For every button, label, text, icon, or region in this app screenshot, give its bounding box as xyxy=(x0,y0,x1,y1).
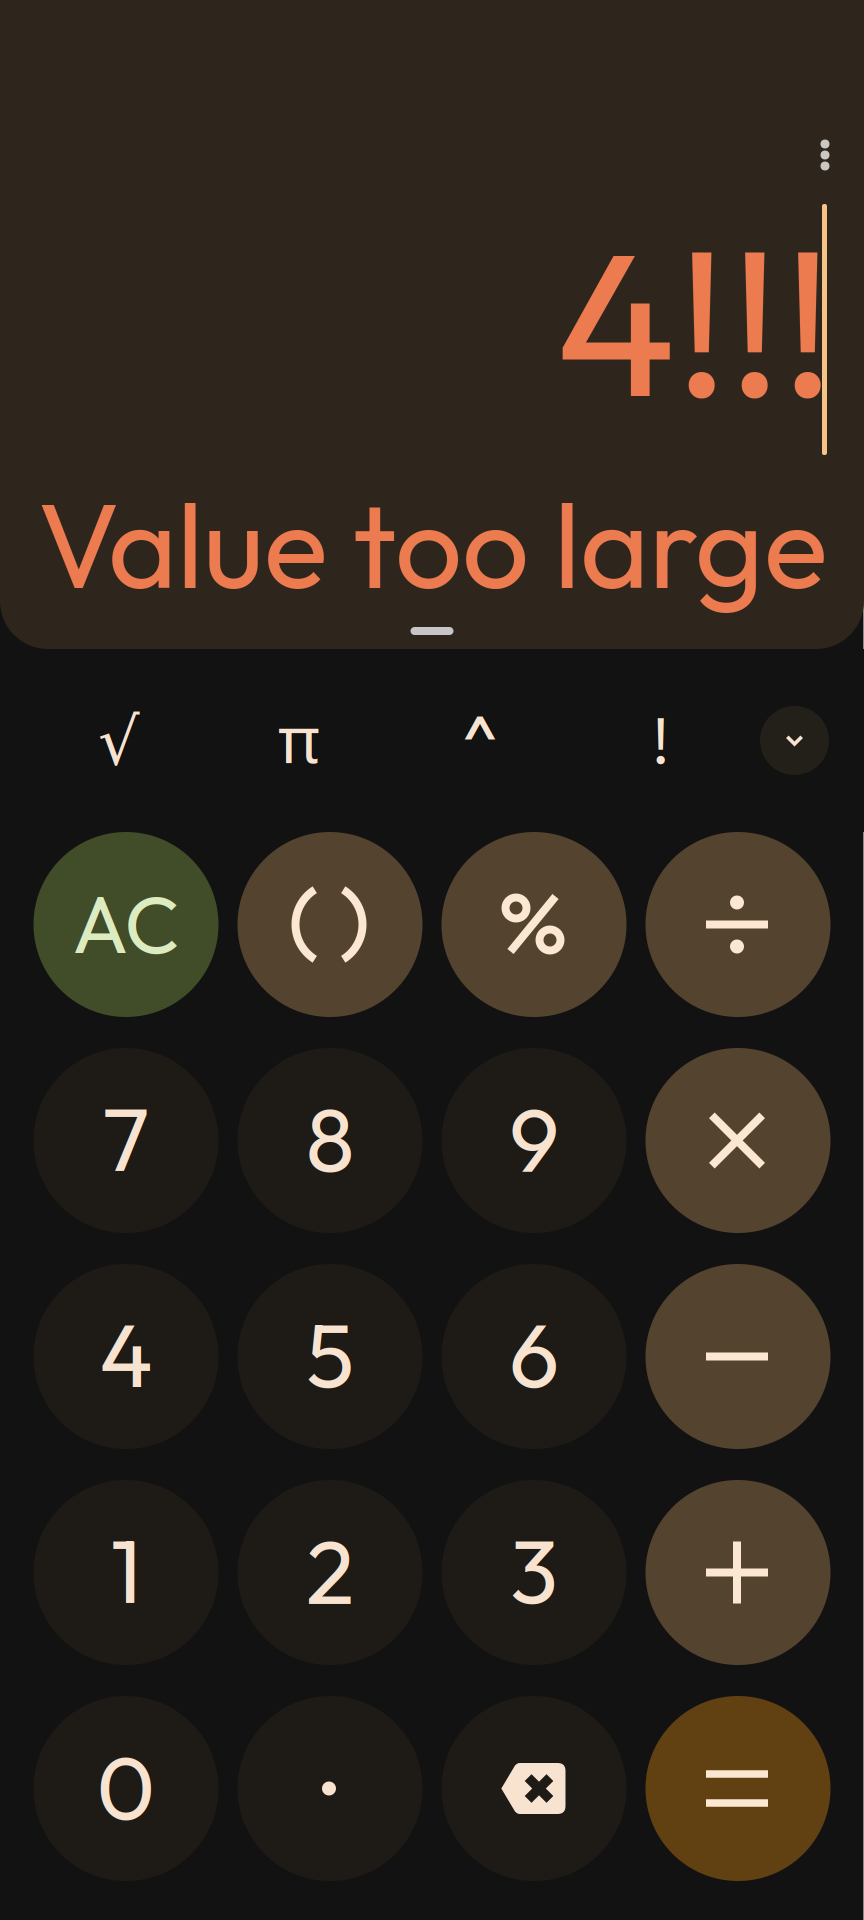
button[interactable]: 1 xyxy=(33,1480,218,1665)
staticText: 0 xyxy=(96,1730,155,1843)
button[interactable]: 5 xyxy=(237,1264,422,1449)
button[interactable]: 3 xyxy=(441,1480,626,1665)
staticText: 4!!! xyxy=(556,195,835,449)
button[interactable]: More options xyxy=(788,118,862,192)
button[interactable]: ! xyxy=(601,680,721,800)
button[interactable]: 8 xyxy=(237,1048,422,1233)
staticText: ^ xyxy=(460,693,500,803)
button[interactable]: ^ xyxy=(420,688,540,808)
button[interactable]: 0 xyxy=(33,1696,218,1881)
staticText: 1 xyxy=(110,1514,141,1627)
button[interactable]: 9 xyxy=(441,1048,626,1233)
button[interactable]: Parentheses xyxy=(237,832,422,1017)
staticText: 8 xyxy=(305,1082,354,1195)
button[interactable]: √ xyxy=(59,682,179,802)
staticText: 2 xyxy=(306,1514,354,1627)
button[interactable]: 7 xyxy=(33,1048,218,1233)
button[interactable]: Multiply xyxy=(645,1048,830,1233)
staticText: AC xyxy=(72,873,179,974)
button[interactable]: Equals xyxy=(645,1696,830,1881)
button[interactable]: π xyxy=(239,678,359,798)
button[interactable]: 4 xyxy=(33,1264,218,1449)
button[interactable]: 2 xyxy=(237,1480,422,1665)
staticText: 6 xyxy=(509,1298,559,1411)
staticText: 4 xyxy=(99,1298,152,1411)
button[interactable]: Decimal point xyxy=(237,1696,422,1881)
staticText: ! xyxy=(652,700,669,780)
button[interactable]: AC xyxy=(33,832,218,1017)
button[interactable]: Backspace xyxy=(441,1696,626,1881)
button[interactable]: Percent xyxy=(441,832,626,1017)
staticText: Value too large xyxy=(38,469,828,619)
staticText: 9 xyxy=(509,1082,559,1195)
staticText: 5 xyxy=(306,1298,354,1411)
button[interactable]: Divide xyxy=(645,832,830,1017)
staticText: √ xyxy=(98,704,140,780)
button[interactable]: Subtract xyxy=(645,1264,830,1449)
button[interactable]: More functions xyxy=(760,706,829,775)
button[interactable]: 6 xyxy=(441,1264,626,1449)
staticText: 7 xyxy=(102,1082,149,1195)
staticText: 3 xyxy=(510,1514,558,1627)
button[interactable]: Add xyxy=(645,1480,830,1665)
staticText: π xyxy=(278,694,320,782)
